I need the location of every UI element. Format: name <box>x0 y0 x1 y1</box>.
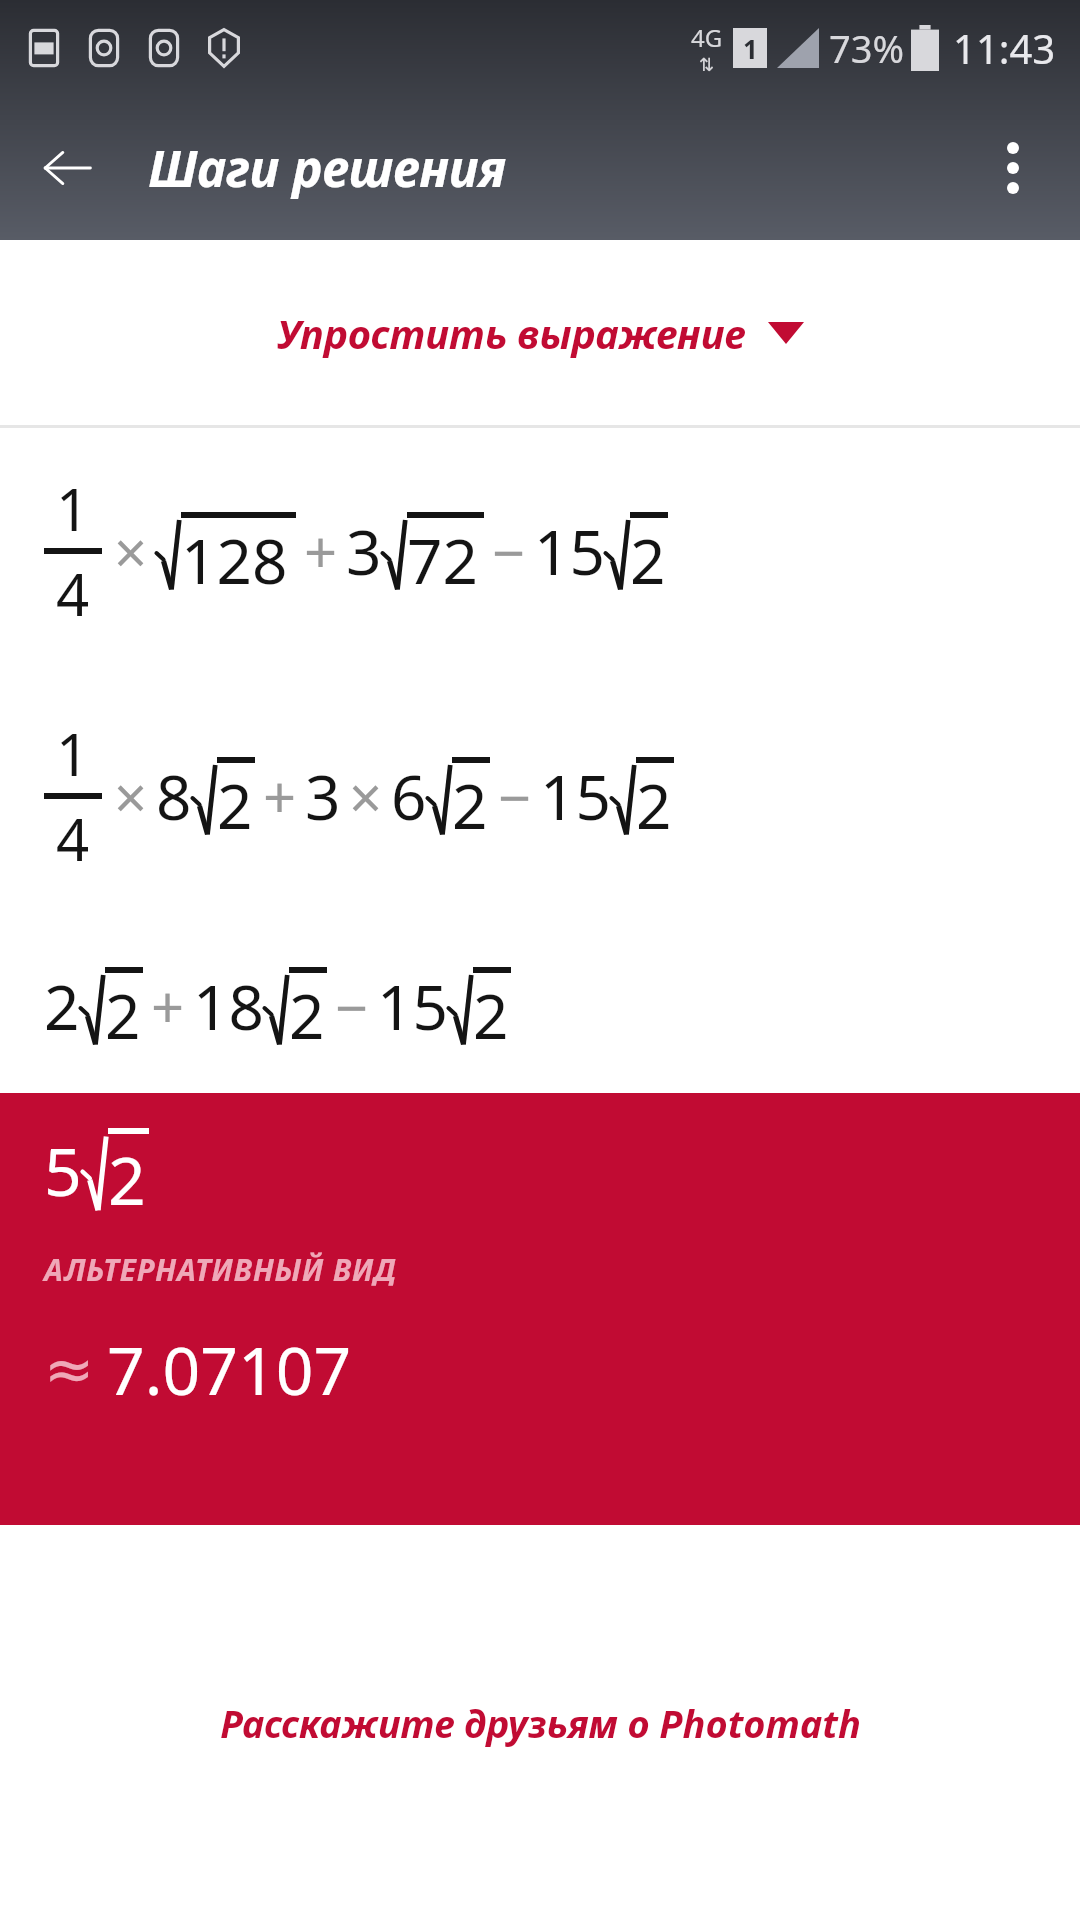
button[interactable]: Back <box>28 129 106 207</box>
staticText: ⇅ <box>699 54 715 75</box>
staticText: 18 <box>193 964 264 1048</box>
staticText: 2 <box>108 1134 146 1212</box>
staticText: 5 <box>44 1125 82 1215</box>
staticText: 128 <box>181 518 288 591</box>
staticText: × <box>114 757 148 836</box>
staticText: 4 <box>56 554 90 633</box>
staticText: 2 <box>452 763 488 836</box>
staticText: ≈ <box>44 1334 95 1404</box>
staticText: + <box>304 512 338 591</box>
staticText: 2 <box>636 763 672 836</box>
staticText: − <box>498 757 532 836</box>
staticText: 15 <box>534 509 605 593</box>
staticText: 3 <box>346 509 382 593</box>
staticText: + <box>263 757 297 836</box>
staticText: 15 <box>377 964 448 1048</box>
staticText: 8 <box>156 754 192 838</box>
staticText: 72 <box>407 518 478 591</box>
staticText: 1 <box>743 31 758 66</box>
staticText: + <box>151 967 185 1046</box>
staticText: 6 <box>391 754 427 838</box>
staticText: 4 <box>56 799 90 878</box>
button[interactable]: Расскажите друзьям о Photomath <box>204 1681 877 1765</box>
staticText: 2 <box>289 973 325 1046</box>
staticText: − <box>335 967 369 1046</box>
staticText: 4G <box>691 21 723 54</box>
button[interactable]: More options <box>974 129 1052 207</box>
staticText: 11:43 <box>953 21 1056 75</box>
staticText: 2 <box>473 973 509 1046</box>
staticText: 73% <box>829 22 905 74</box>
staticText: 1 <box>56 714 90 793</box>
staticText: 3 <box>305 754 341 838</box>
staticText: × <box>349 757 383 836</box>
staticText: × <box>114 512 148 591</box>
button[interactable]: Упростить выражение <box>0 240 1080 425</box>
staticText: 7.07107 <box>107 1324 352 1414</box>
staticText: АЛЬТЕРНАТИВНЫЙ ВИД <box>44 1249 397 1290</box>
staticText: 15 <box>540 754 611 838</box>
staticText: − <box>492 512 526 591</box>
staticText: 2 <box>105 973 141 1046</box>
staticText: 1 <box>56 469 90 548</box>
staticText: Шаги решения <box>148 134 507 202</box>
staticText: Упростить выражение <box>277 306 746 360</box>
staticText: 2 <box>630 518 666 591</box>
staticText: 2 <box>44 964 80 1048</box>
staticText: 2 <box>217 763 253 836</box>
